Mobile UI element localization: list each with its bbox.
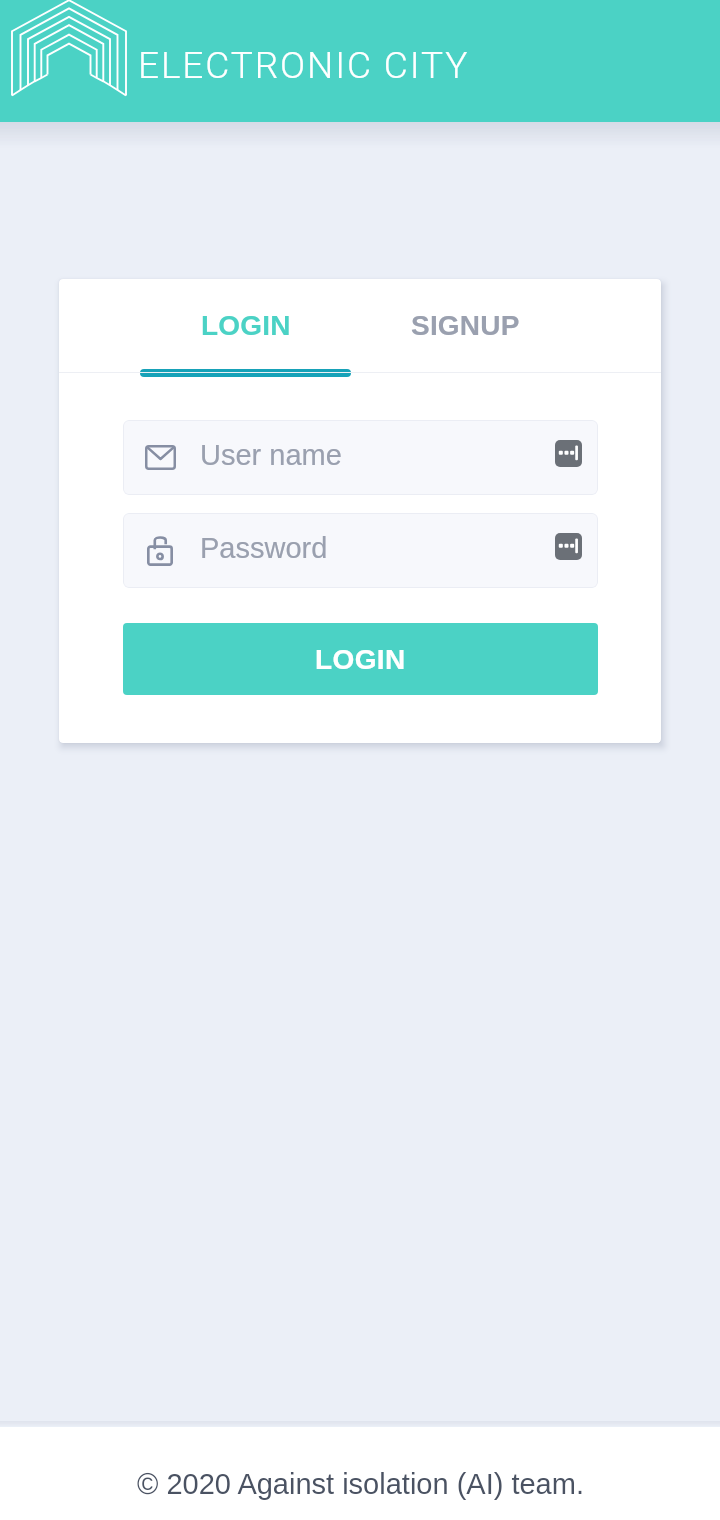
staticText: © 2020 Against isolation (AI) team.: [137, 1468, 584, 1500]
button[interactable]: LOGIN: [123, 623, 598, 695]
button[interactable]: User name: [123, 420, 598, 495]
staticText: LOGIN: [315, 644, 406, 675]
staticText: Password: [200, 532, 328, 564]
staticText: User name: [200, 439, 342, 471]
button[interactable]: Autofill suggestions: [555, 533, 582, 560]
button[interactable]: LOGIN: [140, 279, 351, 374]
staticText: ELECTRONIC CITY: [138, 44, 470, 87]
staticText: LOGIN: [201, 310, 291, 341]
staticText: SIGNUP: [411, 310, 520, 341]
button[interactable]: SIGNUP: [351, 279, 580, 374]
button[interactable]: Autofill suggestions: [555, 440, 582, 467]
button[interactable]: Password: [123, 513, 598, 588]
